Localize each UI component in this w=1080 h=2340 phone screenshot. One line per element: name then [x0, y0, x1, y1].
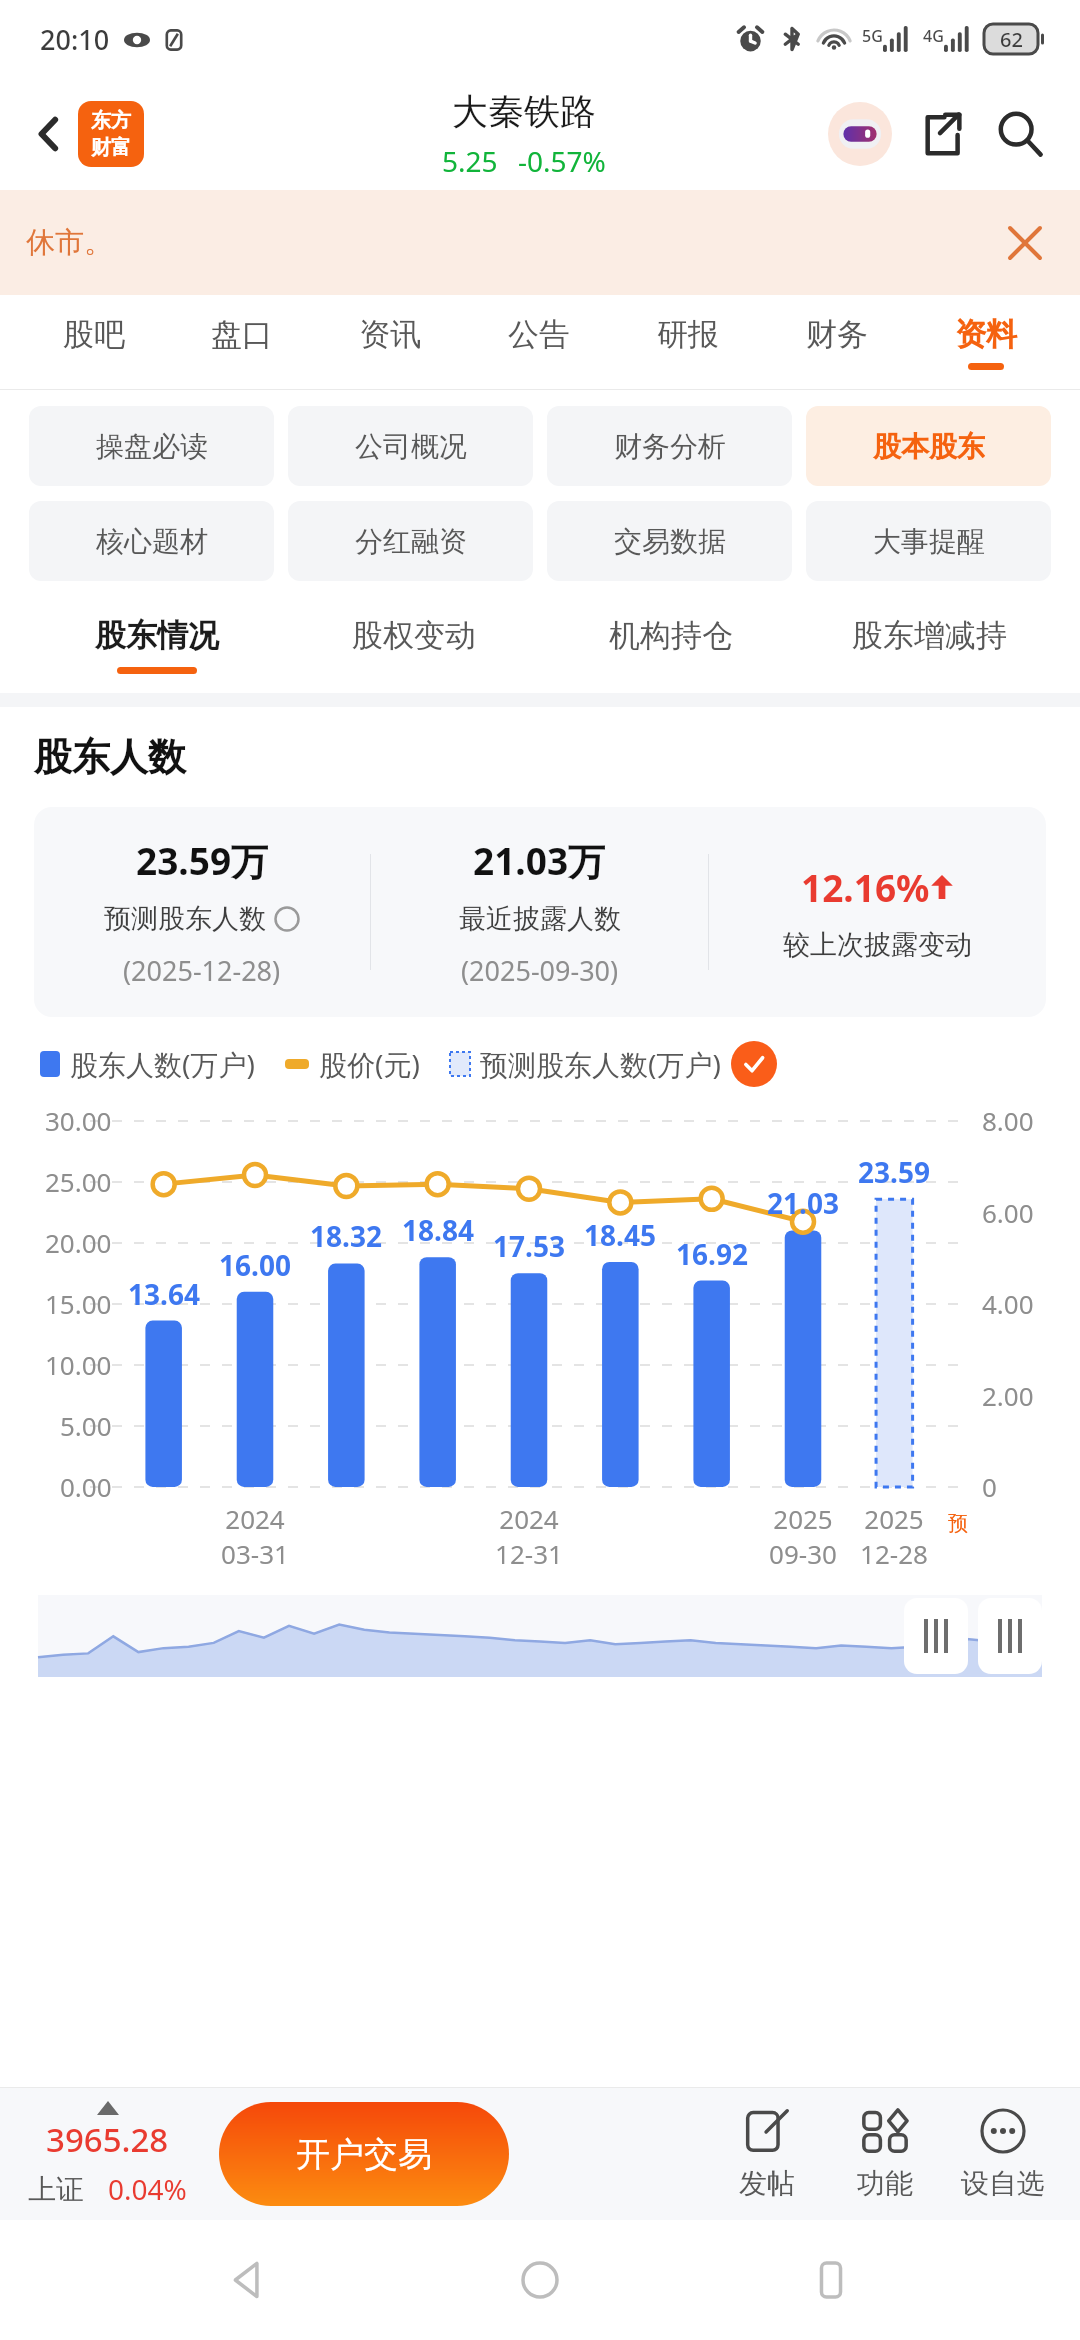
staticText: 23.59万 — [136, 835, 269, 886]
button[interactable]: Share — [900, 94, 980, 174]
staticText: 4.00 — [982, 1286, 1034, 1321]
button[interactable]: 公司概况 — [288, 406, 533, 486]
staticText: 机构持仓 — [609, 616, 733, 655]
button[interactable]: Home — [498, 2238, 582, 2322]
staticText: 分红融资 — [355, 524, 467, 559]
button[interactable]: Back — [207, 2238, 291, 2322]
staticText: 6.00 — [982, 1195, 1034, 1230]
staticText: 较上次披露变动 — [783, 928, 972, 962]
button[interactable]: 财务分析 — [547, 406, 792, 486]
staticText: 核心题材 — [96, 524, 208, 559]
staticText: 30.00 — [45, 1103, 112, 1138]
button[interactable]: 操盘必读 — [29, 406, 274, 486]
staticText: 股东增减持 — [852, 616, 1007, 655]
staticText: 0.04% — [108, 2170, 187, 2208]
staticText: 资讯 — [359, 315, 421, 354]
staticText: 大秦铁路 — [452, 89, 596, 134]
button[interactable]: 股本股东 — [806, 406, 1051, 486]
staticText: 预测股东人数(万户) — [480, 1045, 721, 1083]
staticText: 最近披露人数 — [459, 902, 621, 936]
staticText: 2024 03-31 — [195, 1501, 315, 1571]
staticText: -0.57% — [518, 142, 606, 180]
staticText: 股本股东 — [873, 429, 985, 464]
staticText: 股价(元) — [319, 1045, 420, 1083]
button[interactable]: 股权变动 — [285, 597, 542, 693]
staticText: 股吧 — [63, 315, 125, 354]
staticText: 上证 — [28, 2172, 84, 2207]
staticText: 公司概况 — [355, 429, 467, 464]
staticText: 5.25 — [442, 142, 498, 180]
staticText: 3965.28 — [46, 2117, 169, 2162]
staticText: 25.00 — [45, 1164, 112, 1199]
button[interactable]: 交易数据 — [547, 501, 792, 581]
staticText: 功能 — [857, 2166, 913, 2201]
button[interactable]: 盘口 — [168, 295, 316, 389]
button[interactable]: 分红融资 — [288, 501, 533, 581]
staticText: 财务分析 — [614, 429, 726, 464]
button[interactable]: East Money logo — [78, 101, 144, 167]
button[interactable]: Back — [20, 105, 78, 163]
button[interactable]: Range handle — [38, 1595, 1042, 1677]
staticText: 8.00 — [982, 1103, 1034, 1138]
button[interactable]: 核心题材 — [29, 501, 274, 581]
staticText: 大事提醒 — [873, 524, 985, 559]
staticText: 设自选 — [961, 2166, 1045, 2201]
button[interactable]: Search — [980, 94, 1060, 174]
staticText: 发帖 — [739, 2166, 795, 2201]
button[interactable]: 财务 — [762, 295, 911, 389]
staticText: 4G — [923, 25, 944, 47]
button[interactable]: Toggle forecast — [731, 1041, 777, 1087]
staticText: 操盘必读 — [96, 429, 208, 464]
button[interactable]: Range handle — [978, 1598, 1042, 1674]
button[interactable]: 资讯 — [316, 295, 464, 389]
staticText: 21.03 — [767, 1184, 839, 1222]
button[interactable]: 3965.28 — [28, 2101, 187, 2208]
staticText: 18.84 — [402, 1211, 474, 1249]
button[interactable]: 功能 — [826, 2108, 944, 2201]
staticText: 15.00 — [45, 1286, 112, 1321]
button[interactable]: 休市。 — [0, 190, 1080, 295]
staticText: 股东人数 — [34, 733, 186, 781]
button[interactable]: 公告 — [464, 295, 613, 389]
staticText: (2025-09-30) — [461, 952, 619, 989]
button[interactable]: 股吧 — [20, 295, 168, 389]
staticText: (2025-12-28) — [123, 952, 281, 989]
staticText: 23.59 — [858, 1153, 930, 1191]
staticText: 股权变动 — [352, 616, 476, 655]
staticText: 2025 12-28 — [834, 1501, 954, 1571]
button[interactable]: 大事提醒 — [806, 501, 1051, 581]
staticText: 交易数据 — [614, 524, 726, 559]
staticText: 休市。 — [26, 224, 113, 261]
button[interactable]: 设自选 — [944, 2108, 1062, 2201]
button[interactable]: 股东增减持 — [800, 597, 1058, 693]
staticText: 20.00 — [45, 1225, 112, 1260]
button[interactable]: 股东情况 — [28, 597, 285, 693]
staticText: 东方 — [91, 108, 131, 133]
staticText: 5G — [862, 25, 883, 47]
button[interactable]: 资料 — [911, 295, 1060, 389]
button[interactable]: 研报 — [613, 295, 762, 389]
staticText: 17.53 — [493, 1227, 565, 1265]
button[interactable]: 开户交易 — [219, 2102, 509, 2206]
staticText: 62 — [1000, 26, 1023, 53]
button[interactable]: Range handle — [904, 1598, 968, 1674]
button[interactable]: 机构持仓 — [542, 597, 800, 693]
staticText: 开户交易 — [296, 2133, 432, 2176]
staticText: 股东情况 — [95, 616, 219, 655]
staticText: 财富 — [91, 135, 131, 160]
staticText: 股东人数(万户) — [70, 1045, 255, 1083]
staticText: 2024 12-31 — [469, 1501, 589, 1571]
button[interactable]: Close notice — [996, 214, 1054, 272]
staticText: 18.45 — [584, 1216, 656, 1254]
staticText: 18.32 — [310, 1217, 382, 1255]
staticText: 10.00 — [45, 1347, 112, 1382]
button[interactable]: 发帖 — [708, 2108, 826, 2201]
staticText: 5.00 — [60, 1408, 112, 1443]
button[interactable]: AI assistant — [820, 94, 900, 174]
staticText: 21.03万 — [473, 835, 606, 886]
staticText: 财务 — [806, 315, 868, 354]
staticText: 16.00 — [219, 1246, 291, 1284]
staticText: 20:10 — [40, 21, 110, 58]
staticText: 资料 — [955, 315, 1017, 354]
button[interactable]: Recents — [789, 2238, 873, 2322]
